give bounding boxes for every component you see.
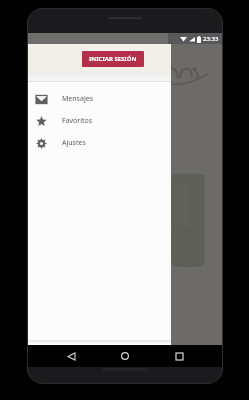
staticText: Favoritos (62, 116, 93, 126)
button[interactable]: INICIAR SESIÓN (82, 51, 144, 67)
button[interactable]: Ajustes (28, 132, 171, 154)
button[interactable]: Back (60, 345, 82, 367)
staticText: Ajustes (62, 138, 86, 148)
staticText: INICIAR SESIÓN (89, 55, 137, 63)
button[interactable]: Recent apps (168, 345, 190, 367)
staticText: 23:33 (203, 35, 219, 43)
button[interactable]: Mensajes (28, 88, 171, 110)
button[interactable]: Home (114, 345, 136, 367)
staticText: Mensajes (62, 94, 94, 104)
button[interactable]: Favoritos (28, 110, 171, 132)
